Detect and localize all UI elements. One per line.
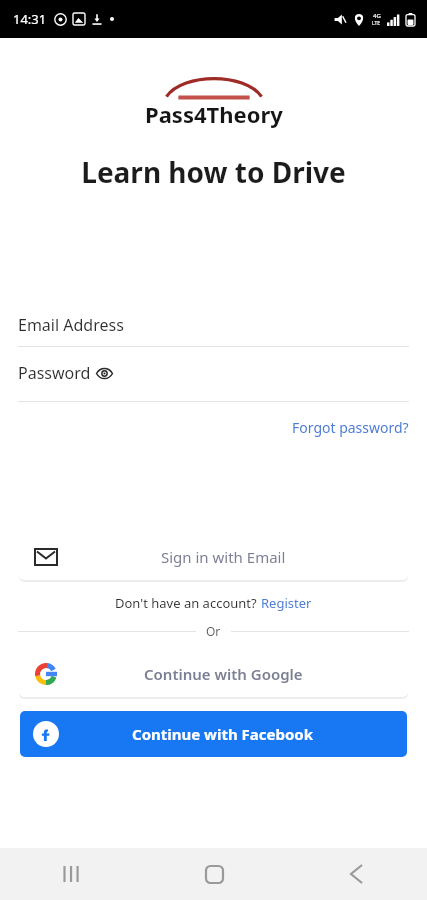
button[interactable]: Back xyxy=(285,848,427,900)
button[interactable]: Show password xyxy=(96,365,113,382)
button[interactable]: Continue with Google xyxy=(19,651,408,697)
button[interactable]: Home xyxy=(143,848,285,900)
staticText: Register xyxy=(261,594,312,612)
staticText: Or xyxy=(206,623,221,639)
staticText: Learn how to Drive xyxy=(0,153,427,191)
button[interactable]: Password xyxy=(18,355,409,391)
staticText: 4G xyxy=(373,12,381,20)
button[interactable]: Forgot password? xyxy=(292,414,409,441)
button[interactable]: Recents xyxy=(0,848,143,900)
staticText: Continue with Facebook xyxy=(132,724,314,744)
staticText: Continue with Google xyxy=(144,664,303,684)
staticText: LTE xyxy=(372,20,381,27)
button[interactable]: Sign in with Email xyxy=(19,534,408,580)
button[interactable]: Register xyxy=(261,594,312,612)
button[interactable]: Email Address xyxy=(18,304,409,346)
staticText: Don't have an account? xyxy=(115,594,261,612)
staticText: Sign in with Email xyxy=(161,547,286,567)
staticText: Password xyxy=(18,362,91,384)
staticText: Email Address xyxy=(18,314,124,336)
staticText: Pass4Theory xyxy=(145,99,283,129)
staticText: 14:31 xyxy=(13,10,47,28)
button[interactable]: Continue with Facebook xyxy=(20,711,407,757)
staticText: Forgot password? xyxy=(292,418,409,437)
